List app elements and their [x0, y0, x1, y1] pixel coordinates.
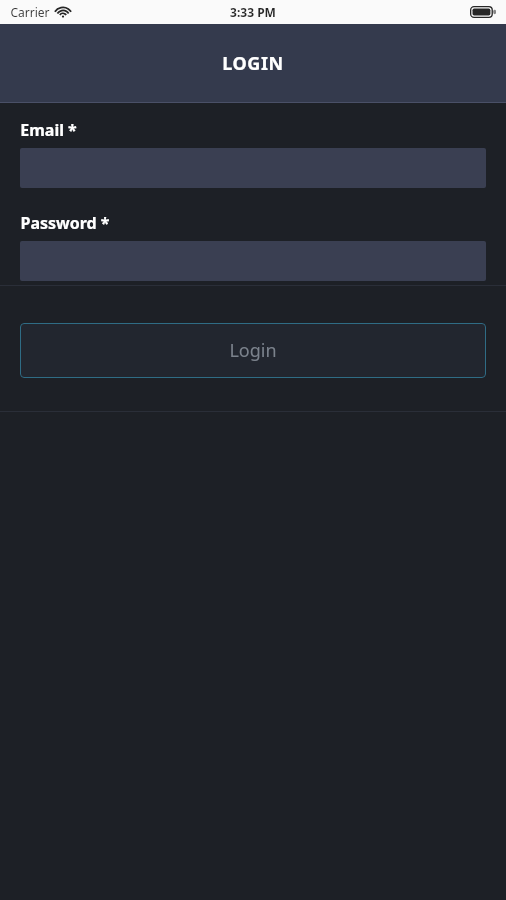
staticText: Carrier: [10, 4, 50, 20]
staticText: LOGIN: [222, 51, 284, 76]
staticText: Login: [229, 338, 277, 363]
staticText: 3:33 PM: [230, 4, 276, 20]
button[interactable]: Login: [20, 323, 486, 378]
staticText: Password *: [20, 212, 110, 234]
staticText: Email *: [20, 119, 77, 141]
